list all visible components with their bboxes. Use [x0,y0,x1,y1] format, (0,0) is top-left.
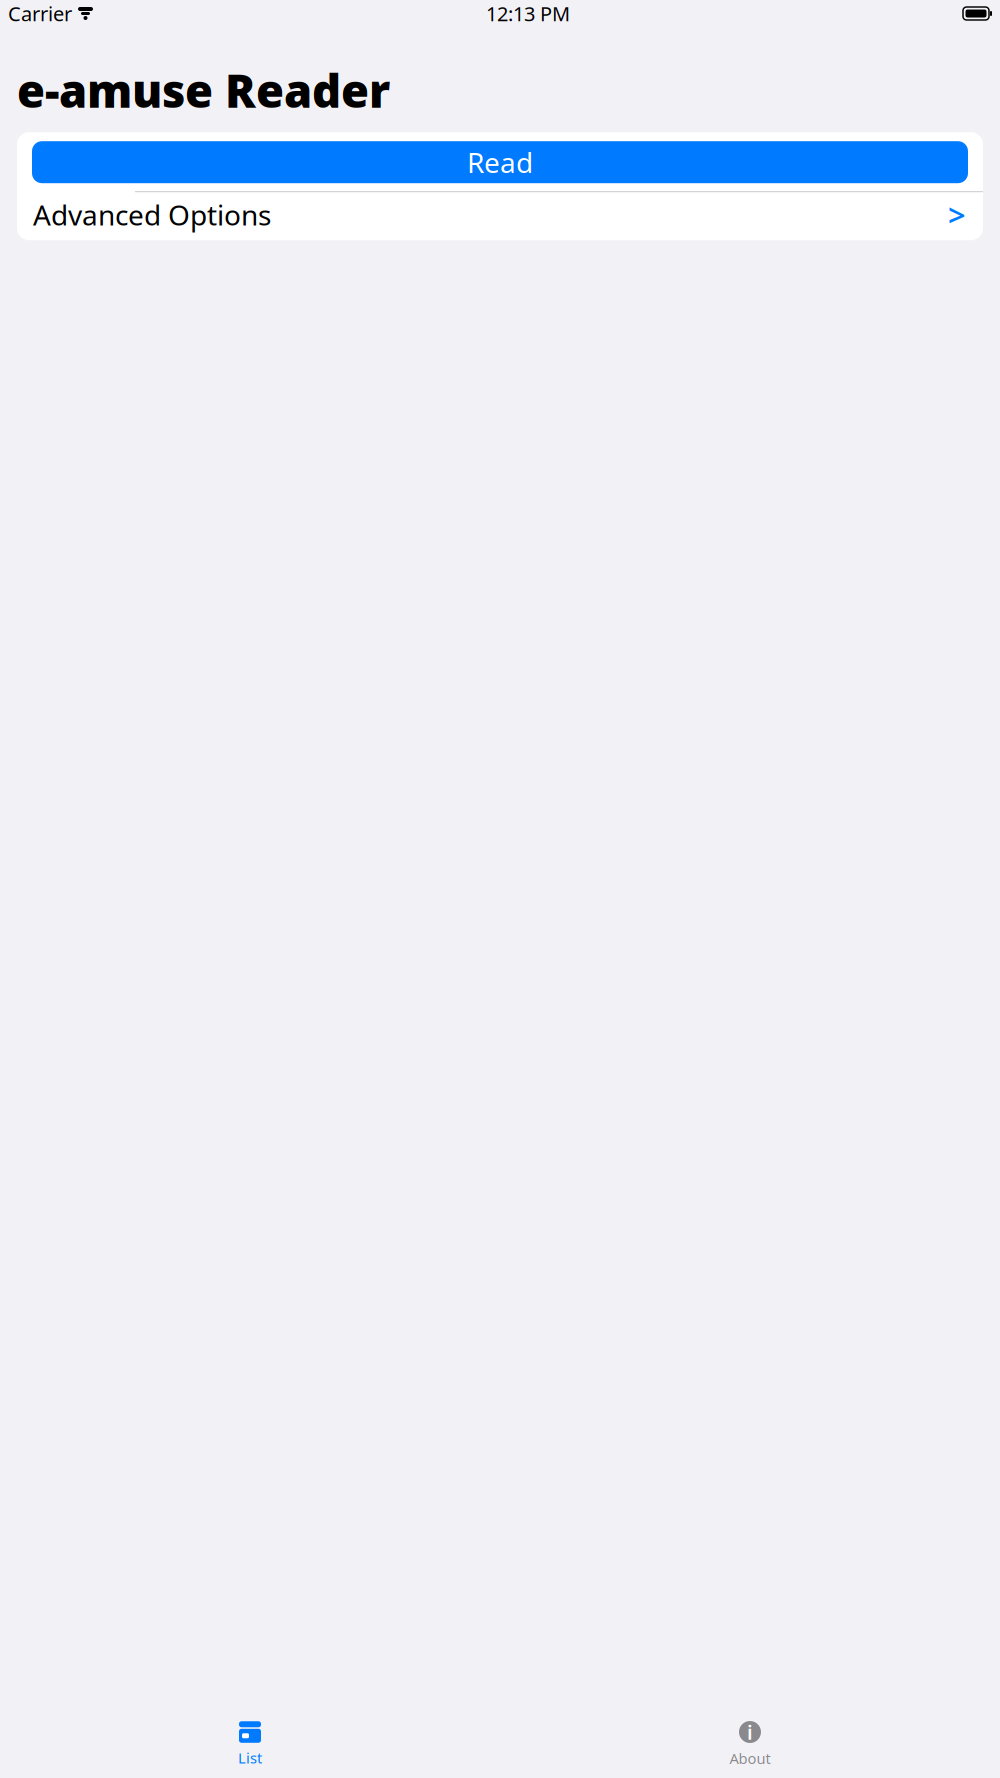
staticText: List [238,1748,262,1767]
staticText: i [747,1719,753,1745]
staticText: Read [467,144,533,181]
staticText: Carrier [8,0,72,27]
button[interactable]: i [500,1720,1000,1768]
button[interactable]: List [0,1721,500,1767]
staticText: Advanced Options [33,196,271,233]
button[interactable]: Read [32,141,968,183]
staticText: About [729,1748,770,1768]
staticText: e-amuse Reader [17,60,390,120]
staticText: 12:13 PM [486,0,570,27]
staticText: > [948,194,966,235]
button[interactable]: Advanced Options [17,192,983,237]
